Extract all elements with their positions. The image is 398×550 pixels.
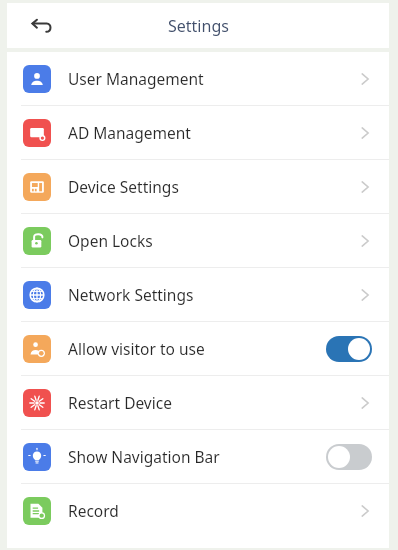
staticText: Open Locks <box>68 230 358 251</box>
staticText: User Management <box>68 68 358 89</box>
button[interactable]: Allow visitor to use <box>7 322 389 375</box>
button[interactable]: AD Management <box>7 106 389 159</box>
staticText: Network Settings <box>68 284 358 305</box>
button[interactable]: Record <box>7 484 389 537</box>
button[interactable]: Restart Device <box>7 376 389 429</box>
staticText: Device Settings <box>68 176 358 197</box>
button[interactable]: Open Locks <box>7 214 389 267</box>
button[interactable]: Device Settings <box>7 160 389 213</box>
staticText: AD Management <box>68 122 358 143</box>
staticText: Settings <box>168 15 229 37</box>
staticText: Restart Device <box>68 392 358 413</box>
button[interactable]: Back <box>21 6 61 46</box>
staticText: Allow visitor to use <box>68 338 326 359</box>
button[interactable]: Network Settings <box>7 268 389 321</box>
staticText: Show Navigation Bar <box>68 446 326 467</box>
button[interactable]: Off <box>326 444 372 470</box>
staticText: Record <box>68 500 358 521</box>
button[interactable]: Show Navigation Bar <box>7 430 389 483</box>
button[interactable]: On <box>326 336 372 362</box>
button[interactable]: User Management <box>7 52 389 105</box>
